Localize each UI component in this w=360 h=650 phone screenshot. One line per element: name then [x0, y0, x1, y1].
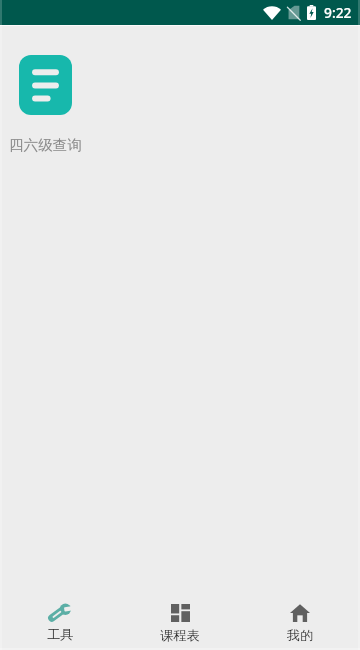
- button[interactable]: Tools: [0, 586, 120, 650]
- staticText: 9:22: [324, 3, 352, 22]
- button[interactable]: Mine: [240, 586, 360, 650]
- staticText: 课程表: [160, 627, 200, 644]
- button[interactable]: 四六级查询: [0, 55, 90, 154]
- staticText: 工具: [47, 626, 74, 643]
- staticText: 四六级查询: [9, 136, 82, 154]
- button[interactable]: Timetable: [120, 586, 240, 650]
- staticText: 我的: [287, 627, 314, 644]
